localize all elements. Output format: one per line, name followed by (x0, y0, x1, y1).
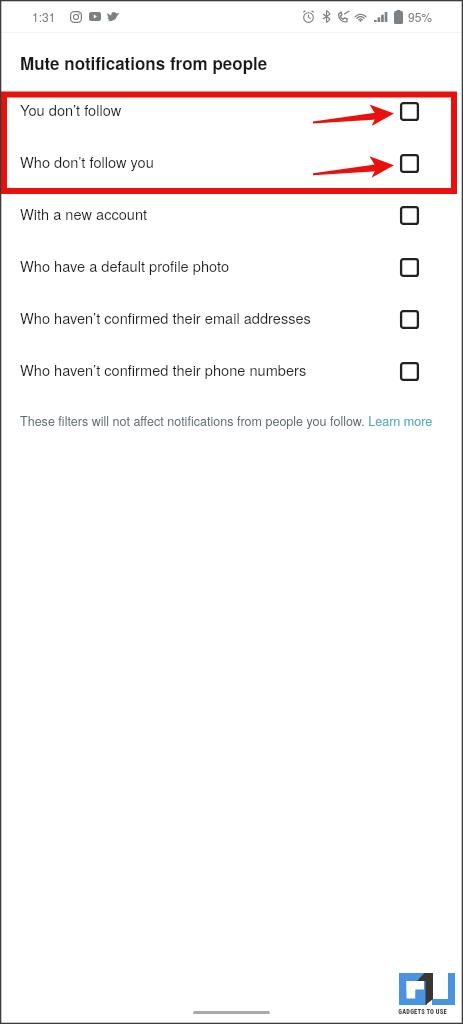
button[interactable]: Who haven’t confirmed their phone number… (0, 345, 463, 397)
staticText: Who haven’t confirmed their phone number… (20, 359, 400, 380)
button[interactable]: Toggle filter: Who haven’t confirmed the… (400, 310, 419, 329)
staticText: With a new account (20, 203, 400, 224)
button[interactable]: Toggle filter: With a new account (400, 206, 419, 225)
staticText: 1:31 (32, 8, 56, 25)
button[interactable]: Who haven’t confirmed their email addres… (0, 293, 463, 345)
button[interactable]: Toggle filter: You don’t follow (400, 102, 419, 121)
button[interactable]: These filters will not affect notificati… (20, 412, 445, 430)
button[interactable]: Toggle filter: Who have a default profil… (400, 258, 419, 277)
staticText: 95% (408, 8, 433, 25)
staticText: You don’t follow (20, 99, 400, 120)
button[interactable]: You don’t follow (0, 85, 463, 137)
button[interactable]: Toggle filter: Who don’t follow you (400, 154, 419, 173)
staticText: These filters will not affect notificati… (20, 412, 433, 430)
staticText: GADGETS TO USE (398, 1008, 447, 1016)
staticText: Who haven’t confirmed their email addres… (20, 307, 400, 328)
button[interactable]: Who don’t follow you (0, 137, 463, 189)
button[interactable]: With a new account (0, 189, 463, 241)
button[interactable]: Toggle filter: Who haven’t confirmed the… (400, 362, 419, 381)
staticText: Who don’t follow you (20, 151, 400, 172)
staticText: Mute notifications from people (20, 51, 268, 75)
staticText: Who have a default profile photo (20, 255, 400, 276)
button[interactable]: Who have a default profile photo (0, 241, 463, 293)
